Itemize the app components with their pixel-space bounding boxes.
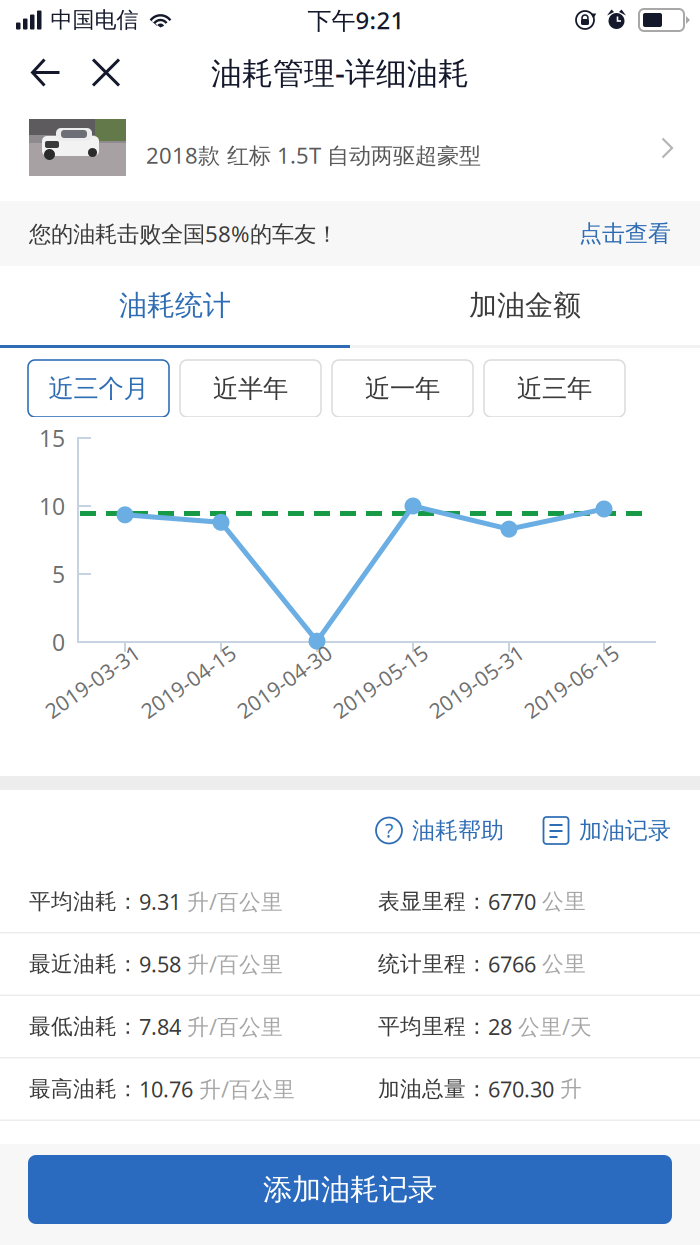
staticText: 28 — [488, 1012, 518, 1041]
staticText: 升 — [560, 1075, 582, 1103]
staticText: 最近油耗： — [29, 950, 139, 978]
staticText: 近一年 — [365, 373, 440, 404]
staticText: 公里/天 — [518, 1012, 592, 1041]
staticText: 2018款 红标 1.5T 自动两驱超豪型 — [146, 140, 481, 170]
staticText: 升/百公里 — [187, 949, 283, 979]
staticText: 2019-04-15 — [137, 679, 247, 707]
staticText: 公里 — [542, 950, 586, 978]
staticText: 10.76 — [139, 1074, 199, 1104]
staticText: 5 — [52, 558, 65, 590]
staticText: 您的油耗击败全国58%的车友！ — [29, 218, 338, 249]
button[interactable]: 点击查看 — [579, 219, 671, 248]
staticText: 近三个月 — [48, 373, 148, 404]
staticText: 2019-04-30 — [233, 679, 343, 707]
staticText: 表显里程： — [378, 888, 488, 915]
staticText: 7.84 — [139, 1012, 187, 1041]
staticText: 9.58 — [139, 949, 187, 979]
staticText: 平均油耗： — [29, 888, 139, 915]
button[interactable]: 加油金额 — [350, 266, 700, 345]
staticText: 添加油耗记录 — [263, 1171, 437, 1208]
button[interactable]: 返回 — [16, 44, 76, 100]
staticText: 670.30 — [488, 1074, 560, 1104]
staticText: 升/百公里 — [187, 887, 283, 916]
staticText: 最低油耗： — [29, 1013, 139, 1040]
button[interactable]: 加油记录 — [542, 816, 671, 845]
staticText: 9.31 — [139, 887, 187, 916]
staticText: 油耗管理-详细油耗 — [211, 51, 469, 93]
button[interactable]: 近半年 — [180, 360, 321, 417]
button[interactable]: 近一年 — [332, 360, 473, 417]
staticText: 15 — [39, 422, 65, 454]
staticText: 2019-06-15 — [520, 679, 630, 707]
staticText: 6770 — [488, 887, 542, 916]
staticText: 油耗统计 — [119, 288, 231, 323]
button[interactable]: 2018款 红标 1.5T 自动两驱超豪型 — [0, 105, 700, 201]
staticText: ? — [385, 818, 393, 843]
staticText: 2019-03-31 — [41, 679, 151, 707]
staticText: 统计里程： — [378, 950, 488, 978]
button[interactable]: 添加油耗记录 — [28, 1155, 672, 1224]
staticText: 点击查看 — [579, 219, 671, 248]
staticText: 2019-05-15 — [329, 679, 439, 707]
button[interactable]: 关闭 — [76, 44, 136, 100]
staticText: 最高油耗： — [29, 1075, 139, 1103]
staticText: 加油记录 — [579, 816, 671, 845]
staticText: 加油总量： — [378, 1075, 488, 1103]
staticText: 油耗帮助 — [412, 816, 504, 845]
button[interactable]: 油耗统计 — [0, 266, 350, 345]
staticText: 近半年 — [213, 373, 288, 404]
staticText: 中国电信 — [50, 6, 138, 34]
staticText: 平均里程： — [378, 1013, 488, 1040]
staticText: 升/百公里 — [199, 1074, 295, 1104]
staticText: 6766 — [488, 949, 542, 979]
staticText: 10 — [39, 490, 65, 522]
staticText: 升/百公里 — [187, 1012, 283, 1041]
button[interactable]: 近三年 — [484, 360, 625, 417]
staticText: 0 — [52, 626, 65, 658]
button[interactable]: 近三个月 — [28, 360, 169, 417]
staticText: 公里 — [542, 888, 586, 915]
staticText: 近三年 — [517, 373, 592, 404]
staticText: 下午9:21 — [307, 4, 404, 36]
button[interactable]: ? — [375, 816, 504, 845]
staticText: 加油金额 — [469, 288, 581, 323]
staticText: 2019-05-31 — [425, 679, 535, 707]
